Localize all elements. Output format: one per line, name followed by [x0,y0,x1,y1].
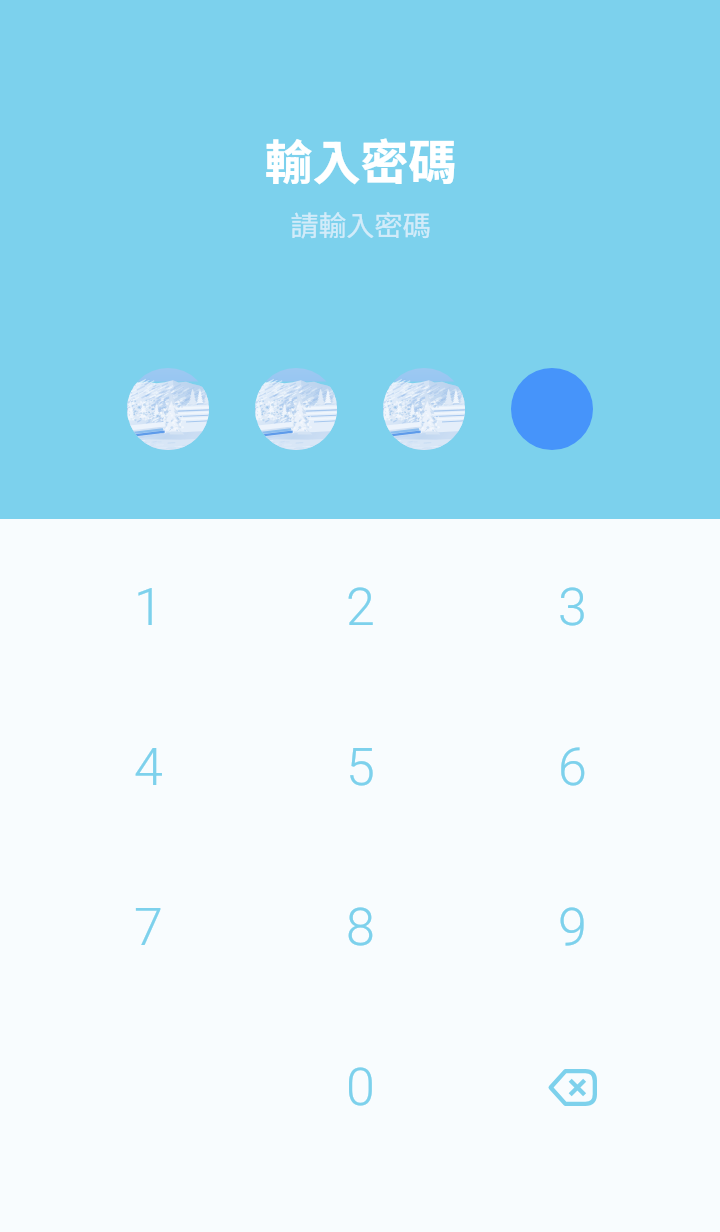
staticText: 輸入密碼 [264,124,457,194]
staticText: 7 [134,897,163,958]
button[interactable]: 2 [254,527,466,687]
staticText: 8 [346,897,375,958]
button[interactable]: 8 [254,847,466,1007]
button[interactable]: 4 [42,687,254,847]
button[interactable]: 9 [466,847,678,1007]
button[interactable]: 5 [254,687,466,847]
staticText: 3 [558,577,587,638]
button[interactable]: 3 [466,527,678,687]
button[interactable]: 6 [466,687,678,847]
staticText: 0 [346,1057,375,1118]
staticText: 4 [134,737,163,798]
staticText: 請輸入密碼 [290,204,431,245]
staticText: 2 [346,577,375,638]
staticText: 9 [558,897,587,958]
button[interactable]: Delete [466,1007,678,1167]
button[interactable]: 0 [254,1007,466,1167]
button[interactable]: 1 [42,527,254,687]
staticText: 1 [134,577,163,638]
button[interactable]: 7 [42,847,254,1007]
staticText: 6 [558,737,587,798]
staticText: 5 [346,737,375,798]
